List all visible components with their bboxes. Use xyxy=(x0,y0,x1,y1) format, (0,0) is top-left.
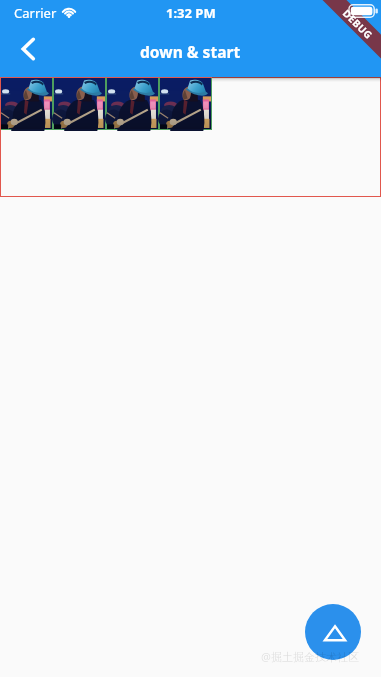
staticText: Carrier xyxy=(14,4,57,22)
button[interactable] xyxy=(107,78,158,129)
button[interactable]: Back xyxy=(0,27,50,77)
button[interactable] xyxy=(160,78,211,129)
button[interactable] xyxy=(1,78,52,129)
staticText: @掘土掘金技术社区 xyxy=(261,649,359,664)
staticText: DEBUG xyxy=(340,6,376,42)
button[interactable] xyxy=(54,78,105,129)
staticText: down & start xyxy=(140,41,241,62)
staticText: 1:32 PM xyxy=(166,4,216,22)
button[interactable]: Play xyxy=(305,604,361,660)
